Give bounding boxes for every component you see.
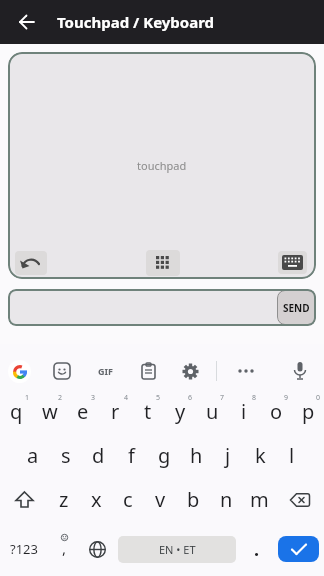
- staticText: o: [270, 398, 283, 425]
- staticText: s: [61, 442, 71, 469]
- staticText: k: [255, 442, 266, 469]
- button[interactable]: [278, 251, 307, 274]
- staticText: e: [77, 398, 89, 425]
- button[interactable]: o: [260, 390, 292, 434]
- staticText: 1: [25, 393, 30, 403]
- button[interactable]: l: [276, 434, 308, 478]
- button[interactable]: [286, 357, 314, 385]
- button[interactable]: x: [80, 478, 112, 522]
- button[interactable]: z: [48, 478, 80, 522]
- staticText: y: [175, 398, 186, 425]
- button[interactable]: ?123: [0, 522, 48, 576]
- staticText: v: [155, 486, 166, 513]
- button[interactable]: SEND: [277, 290, 316, 325]
- button[interactable]: m: [243, 478, 276, 522]
- button[interactable]: [135, 358, 161, 384]
- staticText: ,: [62, 538, 67, 558]
- staticText: l: [289, 442, 295, 469]
- button[interactable]: [232, 357, 260, 385]
- button[interactable]: [177, 358, 203, 384]
- button[interactable]: d: [82, 434, 115, 478]
- button[interactable]: c: [112, 478, 144, 522]
- staticText: r: [111, 398, 120, 425]
- staticText: 6: [188, 393, 193, 403]
- staticText: n: [220, 486, 233, 513]
- staticText: 9: [284, 393, 289, 403]
- button[interactable]: y: [164, 390, 196, 434]
- button[interactable]: v: [144, 478, 177, 522]
- staticText: 5: [156, 393, 161, 403]
- button[interactable]: p: [292, 390, 324, 434]
- button[interactable]: u: [196, 390, 228, 434]
- button[interactable]: i: [228, 390, 260, 434]
- button[interactable]: a: [16, 434, 49, 478]
- button[interactable]: GIF: [91, 357, 119, 385]
- button[interactable]: touchpad: [8, 52, 316, 279]
- staticText: GIF: [98, 365, 113, 377]
- staticText: q: [10, 398, 23, 425]
- staticText: a: [27, 442, 39, 469]
- staticText: m: [250, 486, 269, 513]
- button[interactable]: h: [180, 434, 212, 478]
- staticText: ?123: [10, 540, 38, 558]
- button[interactable]: [273, 522, 324, 576]
- button[interactable]: [10, 5, 44, 39]
- button[interactable]: SEND: [8, 289, 316, 326]
- button[interactable]: w: [33, 390, 66, 434]
- button[interactable]: [81, 522, 114, 576]
- staticText: 4: [124, 393, 129, 403]
- staticText: 2: [58, 393, 63, 403]
- button[interactable]: EN • ET: [114, 522, 240, 576]
- staticText: 3: [91, 393, 96, 403]
- staticText: h: [190, 442, 203, 469]
- button[interactable]: [276, 478, 324, 522]
- staticText: t: [144, 398, 152, 425]
- staticText: g: [158, 442, 171, 469]
- button[interactable]: f: [115, 434, 148, 478]
- button[interactable]: ,: [48, 522, 81, 576]
- button[interactable]: t: [132, 390, 164, 434]
- button[interactable]: .: [240, 522, 273, 576]
- staticText: touchpad: [137, 158, 187, 173]
- staticText: j: [225, 442, 231, 469]
- staticText: 0: [316, 393, 321, 403]
- button[interactable]: r: [99, 390, 132, 434]
- staticText: SEND: [283, 301, 310, 315]
- button[interactable]: s: [49, 434, 82, 478]
- staticText: w: [42, 398, 58, 425]
- button[interactable]: j: [212, 434, 244, 478]
- staticText: z: [59, 486, 69, 513]
- staticText: f: [128, 442, 135, 469]
- staticText: x: [91, 486, 102, 513]
- button[interactable]: b: [177, 478, 210, 522]
- button[interactable]: [0, 478, 48, 522]
- button[interactable]: n: [210, 478, 243, 522]
- staticText: d: [92, 442, 105, 469]
- button[interactable]: g: [148, 434, 180, 478]
- staticText: i: [241, 398, 247, 425]
- button[interactable]: e: [66, 390, 99, 434]
- button[interactable]: [146, 250, 180, 276]
- staticText: 8: [252, 393, 257, 403]
- button[interactable]: q: [0, 390, 33, 434]
- staticText: Touchpad / Keyboard: [57, 12, 215, 32]
- staticText: EN • ET: [159, 542, 196, 557]
- staticText: b: [187, 486, 200, 513]
- button[interactable]: k: [244, 434, 276, 478]
- button[interactable]: [8, 360, 31, 383]
- button[interactable]: [15, 251, 47, 275]
- staticText: c: [123, 486, 133, 513]
- button[interactable]: [50, 359, 74, 383]
- staticText: .: [254, 537, 260, 562]
- staticText: p: [302, 398, 315, 425]
- staticText: 7: [220, 393, 225, 403]
- staticText: u: [206, 398, 219, 425]
